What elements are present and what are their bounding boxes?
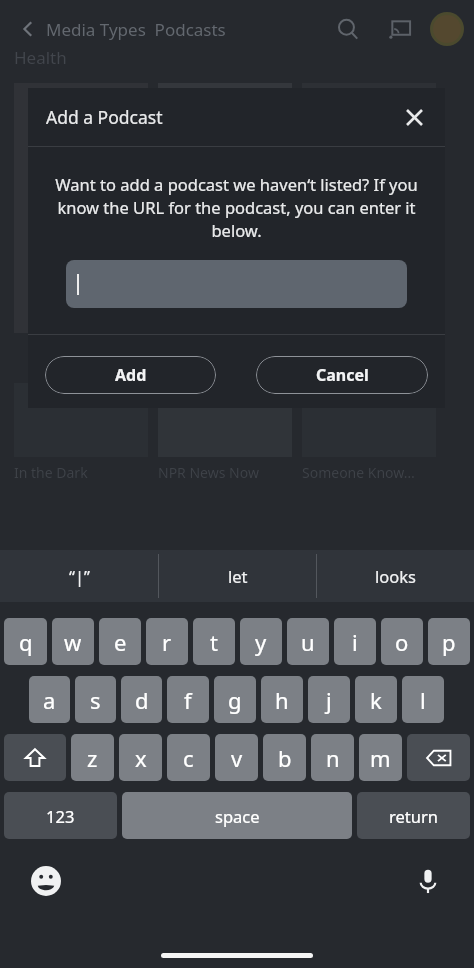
button[interactable]: n xyxy=(311,734,354,781)
button[interactable]: h xyxy=(261,676,303,723)
button[interactable]: t xyxy=(193,618,235,665)
button[interactable]: Close xyxy=(397,100,431,134)
staticText: Add a Podcast xyxy=(46,105,163,129)
button[interactable]: Add xyxy=(45,356,216,394)
staticText: w xyxy=(64,627,82,657)
staticText: In the Dark xyxy=(14,463,158,482)
button[interactable]: c xyxy=(167,734,210,781)
button[interactable]: return xyxy=(357,792,470,839)
staticText: o xyxy=(395,627,409,657)
staticText: v xyxy=(231,743,243,773)
button[interactable]: j xyxy=(308,676,350,723)
button[interactable]: x xyxy=(119,734,162,781)
button[interactable] xyxy=(66,260,407,308)
staticText: j xyxy=(326,685,332,715)
button[interactable]: s xyxy=(75,676,116,723)
staticText: b xyxy=(278,743,292,773)
staticText: NPR News Now xyxy=(158,463,302,482)
staticText: Health xyxy=(14,46,67,69)
button[interactable]: Voice input xyxy=(408,861,448,901)
button[interactable]: g xyxy=(214,676,256,723)
button[interactable]: d xyxy=(121,676,162,723)
staticText: 123 xyxy=(46,805,75,827)
staticText: Someone Know… xyxy=(302,463,415,482)
button[interactable]: p xyxy=(428,618,470,665)
staticText: c xyxy=(183,743,194,773)
staticText: return xyxy=(389,805,438,827)
button[interactable]: y xyxy=(240,618,282,665)
staticText: “|” xyxy=(69,565,90,587)
staticText: Add xyxy=(115,364,147,386)
staticText: Want to add a podcast we haven‘t listed?… xyxy=(54,173,419,242)
button[interactable]: Cast xyxy=(380,9,420,49)
staticText: Cancel xyxy=(316,364,369,386)
staticText: l xyxy=(420,685,426,715)
button[interactable]: a xyxy=(29,676,70,723)
staticText: u xyxy=(301,627,315,657)
staticText: a xyxy=(43,685,56,715)
button[interactable]: f xyxy=(167,676,209,723)
staticText: s xyxy=(90,685,101,715)
button[interactable]: Search xyxy=(328,9,368,49)
button[interactable]: looks xyxy=(317,550,474,602)
staticText: k xyxy=(370,685,382,715)
staticText: t xyxy=(210,627,218,657)
staticText: d xyxy=(135,685,149,715)
button[interactable]: Backspace xyxy=(407,734,470,781)
staticText: looks xyxy=(375,565,416,587)
staticText: Media Types Podcasts xyxy=(46,18,226,41)
button[interactable]: w xyxy=(52,618,94,665)
button[interactable]: “|” xyxy=(0,550,158,602)
button[interactable]: Shift xyxy=(4,734,66,781)
staticText: p xyxy=(442,627,456,657)
staticText: x xyxy=(135,743,147,773)
staticText: q xyxy=(19,627,33,657)
staticText: y xyxy=(255,627,267,657)
button[interactable]: k xyxy=(355,676,397,723)
button[interactable]: 123 xyxy=(4,792,117,839)
button[interactable]: u xyxy=(287,618,329,665)
staticText: f xyxy=(184,685,192,715)
button[interactable]: q xyxy=(4,618,47,665)
staticText: z xyxy=(87,743,98,773)
button[interactable]: e xyxy=(99,618,141,665)
staticText: r xyxy=(162,627,172,657)
staticText: i xyxy=(352,627,358,657)
staticText: space xyxy=(215,805,260,827)
staticText: g xyxy=(228,685,242,715)
button[interactable]: let xyxy=(159,550,316,602)
button[interactable]: Cancel xyxy=(256,356,428,394)
button[interactable]: space xyxy=(122,792,352,839)
button[interactable]: z xyxy=(71,734,114,781)
staticText: h xyxy=(275,685,289,715)
staticText: m xyxy=(370,743,391,773)
button[interactable]: l xyxy=(402,676,444,723)
button[interactable]: b xyxy=(263,734,306,781)
staticText: n xyxy=(326,743,340,773)
staticText: e xyxy=(114,627,127,657)
button[interactable]: Back xyxy=(10,11,46,47)
button[interactable]: m xyxy=(359,734,402,781)
button[interactable]: Emoji xyxy=(26,861,66,901)
button[interactable]: r xyxy=(146,618,188,665)
button[interactable]: v xyxy=(215,734,258,781)
button[interactable]: o xyxy=(381,618,423,665)
staticText: let xyxy=(228,565,248,587)
button[interactable]: i xyxy=(334,618,376,665)
button[interactable]: Account xyxy=(430,12,464,46)
